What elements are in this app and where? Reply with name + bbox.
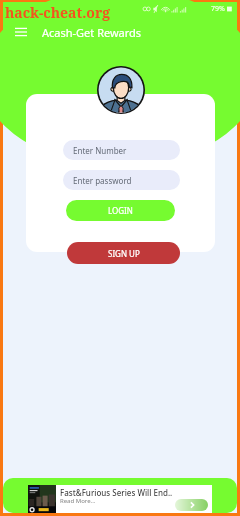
- staticText: Acash-Get Rewards: [42, 25, 142, 40]
- button[interactable]: Enter password: [63, 170, 180, 190]
- staticText: Enter password: [73, 175, 132, 186]
- button[interactable]: SIGN UP: [67, 242, 180, 264]
- staticText: Enter Number: [73, 145, 127, 156]
- button[interactable]: LOGIN: [66, 200, 175, 221]
- staticText: LOGIN: [108, 205, 133, 216]
- staticText: 79%: [211, 4, 225, 14]
- button[interactable]: Menu: [9, 20, 33, 44]
- staticText: SIGN UP: [108, 248, 140, 259]
- button[interactable]: Open advertisement: [175, 499, 208, 511]
- staticText: Fast&Furious Series Will End..: [60, 487, 173, 498]
- staticText: Read More...: [60, 497, 96, 505]
- staticText: hack-cheat.org: [5, 3, 111, 22]
- button[interactable]: Enter Number: [63, 140, 180, 160]
